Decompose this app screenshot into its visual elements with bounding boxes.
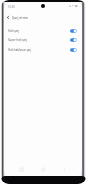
button[interactable]: Home [40, 166, 47, 173]
button[interactable]: Back [61, 166, 68, 173]
button[interactable]: Hızlı kablosuz şarj [4, 45, 82, 55]
button[interactable]: Hızlı şarj [4, 26, 82, 36]
staticText: 10:30 [8, 5, 15, 9]
button[interactable]: Recent apps [18, 166, 25, 173]
staticText: Hızlı kablosuz şarj [8, 48, 70, 52]
staticText: Süper hızlı şarj [8, 38, 70, 42]
staticText: Şarj etme [12, 15, 29, 20]
button[interactable]: Back [5, 14, 11, 20]
button[interactable]: Süper hızlı şarj [4, 35, 82, 45]
staticText: Hızlı şarj [8, 29, 70, 33]
